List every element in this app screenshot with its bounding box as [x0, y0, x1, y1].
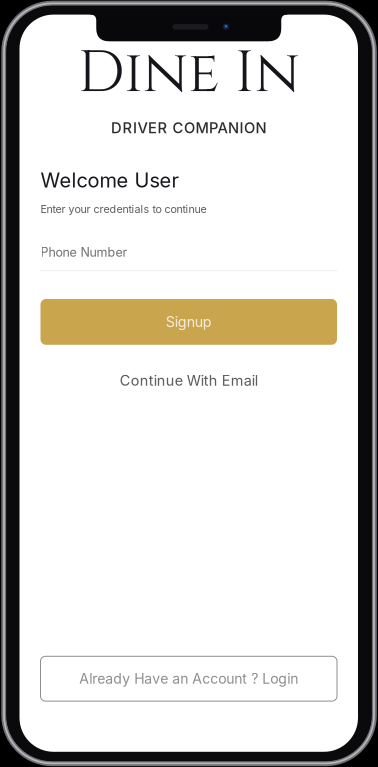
staticText: Enter your credentials to continue [40, 203, 206, 215]
staticText: Continue With Email [120, 372, 258, 389]
staticText: Phone Number [40, 245, 127, 260]
button[interactable]: Signup [40, 299, 337, 345]
staticText: Dine In [78, 35, 300, 113]
staticText: Already Have an Account ? Login [79, 670, 298, 687]
staticText: DRIVER COMPANION [111, 119, 266, 137]
button[interactable]: Already Have an Account ? Login [40, 656, 337, 701]
staticText: Signup [166, 313, 212, 331]
button[interactable]: Continue With Email [40, 369, 337, 393]
staticText: Welcome User [40, 168, 178, 192]
